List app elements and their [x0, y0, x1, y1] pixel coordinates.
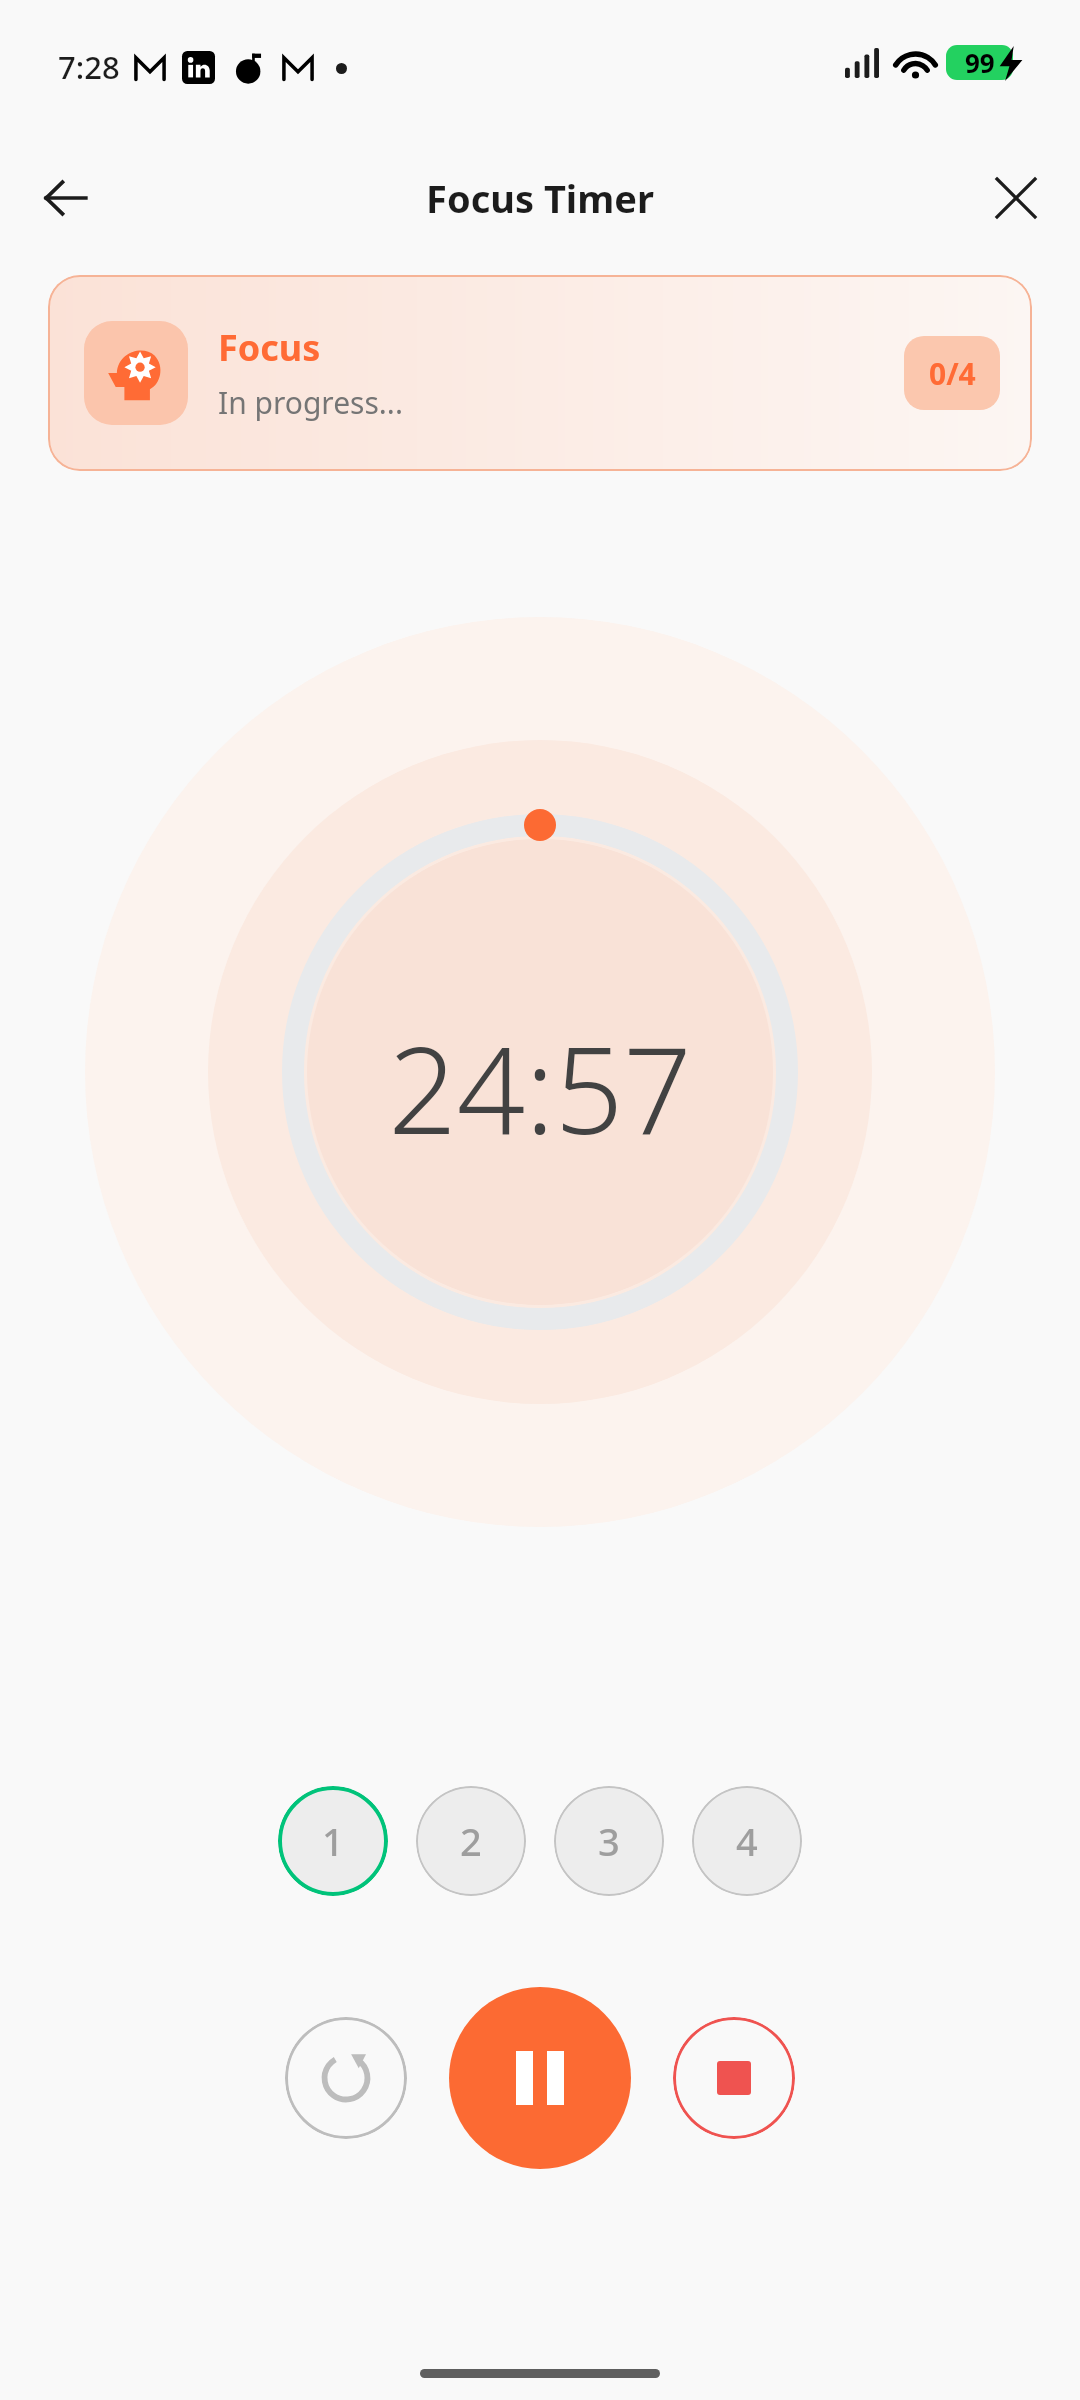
button[interactable]: 2	[416, 1786, 526, 1896]
button[interactable]: 3	[554, 1786, 664, 1896]
button[interactable]: Restart	[285, 2017, 407, 2139]
staticText: 4	[736, 1815, 758, 1867]
staticText: 7:28	[58, 46, 120, 88]
staticText: 24:57	[388, 1006, 692, 1169]
staticText: 3	[598, 1815, 620, 1867]
button[interactable]: Focus	[48, 275, 1032, 471]
button[interactable]: 4	[692, 1786, 802, 1896]
staticText: 99	[965, 45, 995, 80]
staticText: 1	[322, 1815, 344, 1867]
button[interactable]: Pause	[449, 1987, 631, 2169]
button[interactable]: Close	[974, 156, 1058, 240]
button[interactable]: 1	[278, 1786, 388, 1896]
staticText: 2	[460, 1815, 482, 1867]
button[interactable]: Stop	[673, 2017, 795, 2139]
button[interactable]: Back	[24, 156, 108, 240]
staticText: Focus Timer	[426, 172, 654, 224]
staticText: 0/4	[929, 353, 976, 394]
staticText: Focus	[218, 323, 321, 372]
staticText: In progress...	[218, 382, 403, 423]
